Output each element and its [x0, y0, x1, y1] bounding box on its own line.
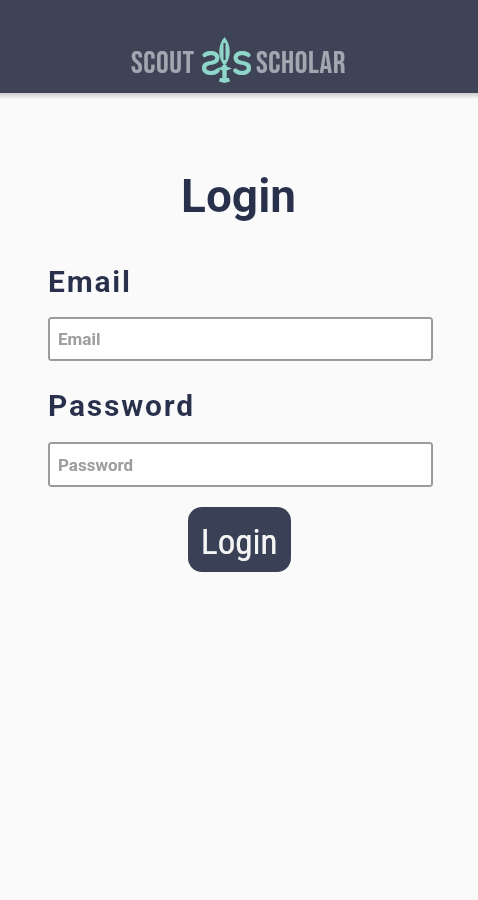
button[interactable]: Email [48, 317, 433, 361]
staticText: S [232, 41, 253, 84]
staticText: Password [48, 388, 196, 423]
staticText: SCOUT [131, 45, 195, 83]
staticText: Login [201, 522, 278, 563]
staticText: Email [48, 264, 132, 299]
staticText: Login [181, 169, 297, 223]
staticText: S [200, 41, 221, 84]
staticText: Password [58, 455, 134, 475]
button[interactable]: Password [48, 442, 433, 487]
staticText: Email [58, 329, 101, 349]
staticText: SCHOLAR [256, 45, 347, 83]
button[interactable]: Login [188, 507, 291, 572]
